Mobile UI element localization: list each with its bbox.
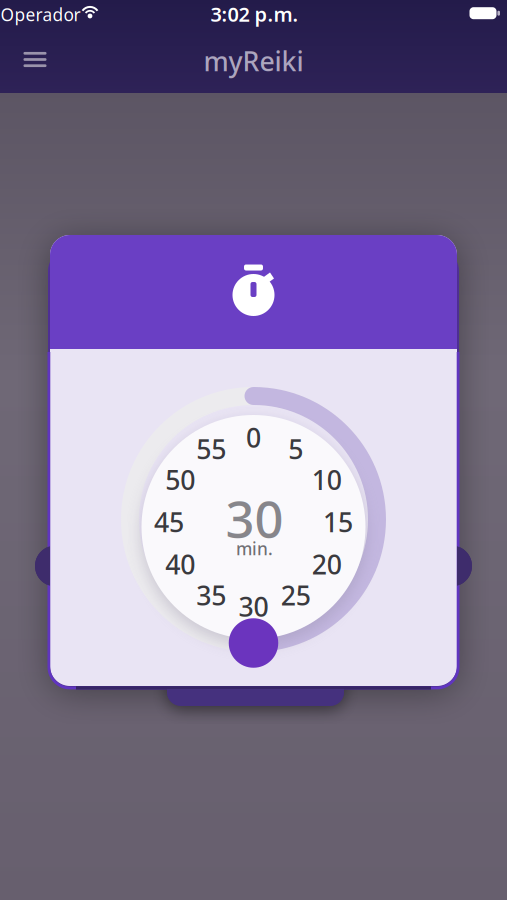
button[interactable]: Adjust minutes	[229, 618, 278, 668]
staticText: 20	[312, 546, 342, 582]
staticText: myReiki	[203, 43, 303, 79]
staticText: 15	[323, 504, 353, 540]
staticText: 50	[165, 462, 195, 497]
staticText: 3:02 p.m.	[210, 1, 298, 27]
staticText: 25	[281, 577, 311, 613]
staticText: 10	[312, 462, 342, 497]
button[interactable]: Menu	[15, 44, 54, 75]
staticText: 5	[288, 431, 303, 466]
staticText: 45	[154, 504, 184, 540]
staticText: 30	[225, 484, 283, 552]
staticText: 35	[196, 577, 226, 613]
staticText: 0	[246, 420, 261, 455]
staticText: 55	[196, 431, 226, 466]
staticText: Operador	[0, 3, 80, 26]
staticText: min.	[236, 537, 273, 560]
staticText: 30	[238, 589, 268, 624]
staticText: 40	[165, 546, 195, 582]
